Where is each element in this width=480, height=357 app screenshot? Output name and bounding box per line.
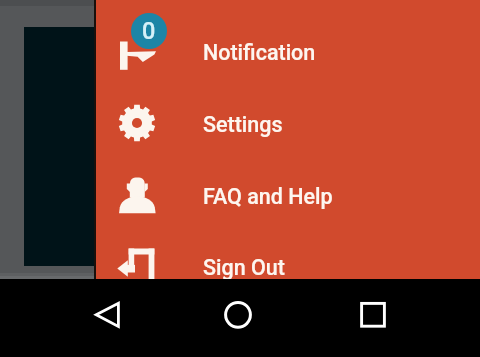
button[interactable]: Back	[78, 279, 138, 357]
button[interactable]: 0	[96, 17, 480, 88]
staticText: FAQ and Help	[203, 184, 333, 209]
staticText: Settings	[203, 112, 283, 137]
button[interactable]: FAQ and Help	[96, 161, 480, 232]
button[interactable]: Recent apps	[343, 279, 403, 357]
staticText: Notification	[203, 40, 316, 65]
button[interactable]: Settings	[96, 89, 480, 160]
button[interactable]: Sign Out	[96, 232, 480, 303]
staticText: Sign Out	[203, 255, 285, 280]
button[interactable]: Home	[208, 279, 268, 357]
staticText: 0	[142, 17, 156, 45]
